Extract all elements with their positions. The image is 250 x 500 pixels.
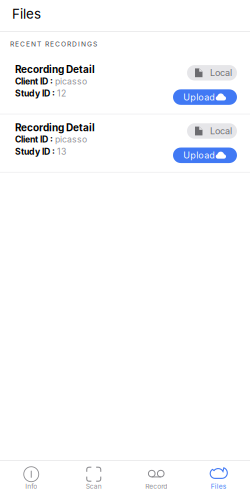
staticText: Recording Detail [15, 63, 95, 75]
staticText: Upload [183, 150, 215, 161]
button[interactable]: Files [187, 461, 250, 500]
button[interactable]: Record [125, 461, 187, 500]
button[interactable]: Info [0, 461, 62, 500]
staticText: Info [25, 482, 37, 490]
staticText: Files [211, 482, 227, 490]
staticText: Client ID : [15, 134, 55, 145]
staticText: Study ID : [15, 146, 57, 157]
button[interactable]: Local [187, 65, 237, 81]
staticText: RECENT RECORDINGS [10, 40, 97, 48]
staticText: 13 [57, 146, 66, 157]
staticText: Scan [86, 482, 102, 490]
staticText: Client ID : [15, 76, 55, 86]
staticText: Recording Detail [15, 122, 95, 134]
staticText: picasso [55, 134, 87, 145]
staticText: Local [210, 67, 232, 78]
button[interactable]: Upload [173, 89, 237, 105]
staticText: Study ID : [15, 88, 57, 99]
staticText: Local [210, 125, 232, 136]
staticText: Record [145, 482, 167, 490]
button[interactable]: Upload [173, 148, 237, 163]
staticText: Upload [183, 92, 215, 103]
button[interactable]: Local [187, 123, 237, 139]
staticText: Files [12, 6, 41, 22]
button[interactable]: Scan [62, 461, 125, 500]
staticText: picasso [55, 76, 87, 86]
staticText: 12 [57, 88, 66, 99]
